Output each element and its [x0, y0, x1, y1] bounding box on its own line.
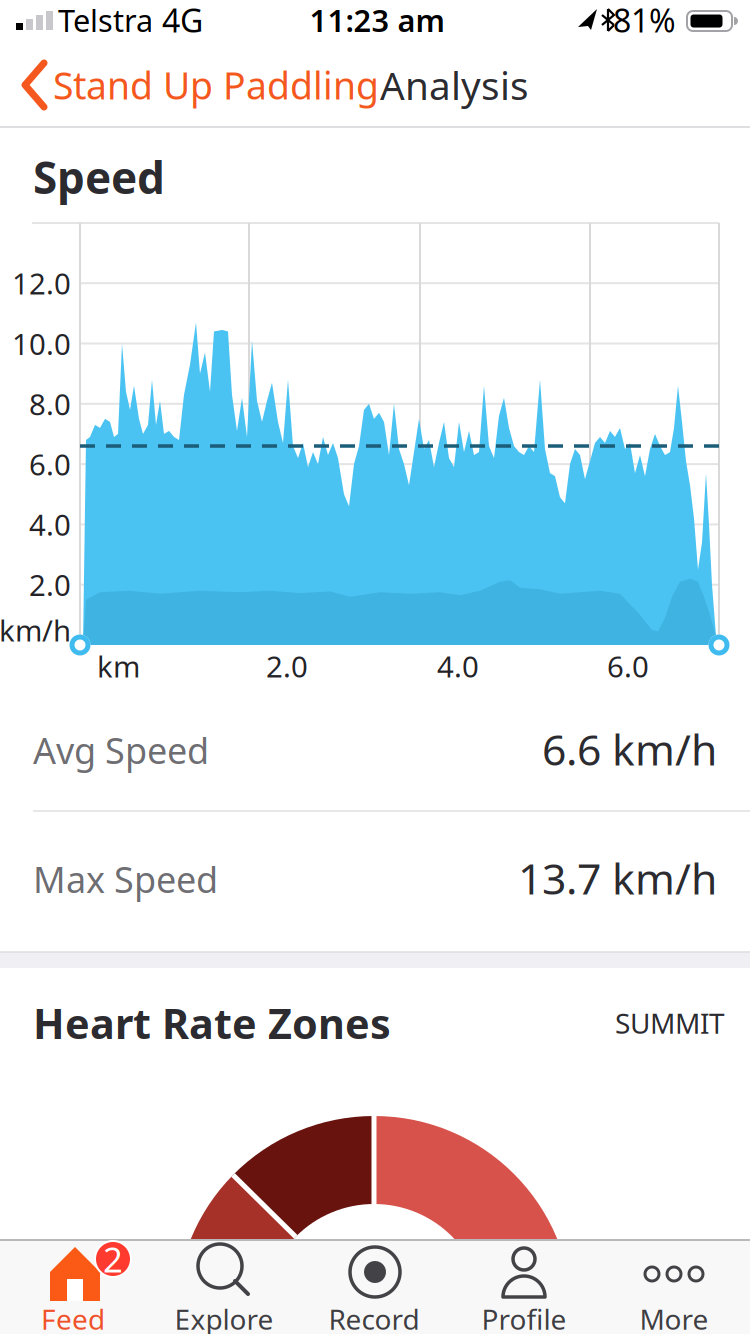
staticText: Speed [33, 148, 165, 206]
staticText: Stand Up Paddling [53, 60, 379, 110]
button[interactable]: Profile [450, 1240, 600, 1334]
staticText: 2.0 [29, 565, 71, 604]
staticText: 4.0 [437, 646, 479, 685]
staticText: 10.0 [12, 324, 71, 363]
staticText: Max Speed [33, 855, 218, 903]
staticText: 4G [162, 0, 203, 41]
staticText: km [97, 646, 140, 685]
button[interactable]: More [600, 1240, 750, 1334]
staticText: 6.6 km/h [542, 721, 717, 777]
staticText: 81% [613, 0, 676, 41]
staticText: Telstra [58, 0, 153, 40]
staticText: 12.0 [12, 264, 71, 303]
staticText: km/h [0, 610, 71, 649]
staticText: Record [328, 1300, 419, 1334]
staticText: Avg Speed [33, 726, 209, 774]
button[interactable]: Explore [150, 1240, 300, 1334]
staticText: 8.0 [29, 384, 71, 423]
staticText: 6.0 [607, 646, 649, 685]
staticText: 2.0 [266, 646, 308, 685]
staticText: 2 [103, 1236, 123, 1282]
button[interactable]: Record [300, 1240, 450, 1334]
staticText: 13.7 km/h [518, 850, 717, 906]
staticText: 11:23 am [309, 0, 444, 40]
button[interactable]: 2 [0, 1240, 150, 1334]
button[interactable]: Stand Up Paddling [15, 53, 435, 117]
staticText: More [639, 1300, 708, 1334]
staticText: SUMMIT [615, 1004, 725, 1042]
staticText: Explore [174, 1300, 273, 1334]
staticText: Feed [41, 1300, 105, 1334]
staticText: Profile [481, 1300, 566, 1334]
staticText: Analysis [380, 59, 529, 111]
staticText: Heart Rate Zones [33, 996, 391, 1050]
staticText: 4.0 [29, 505, 71, 544]
staticText: 6.0 [29, 445, 71, 484]
